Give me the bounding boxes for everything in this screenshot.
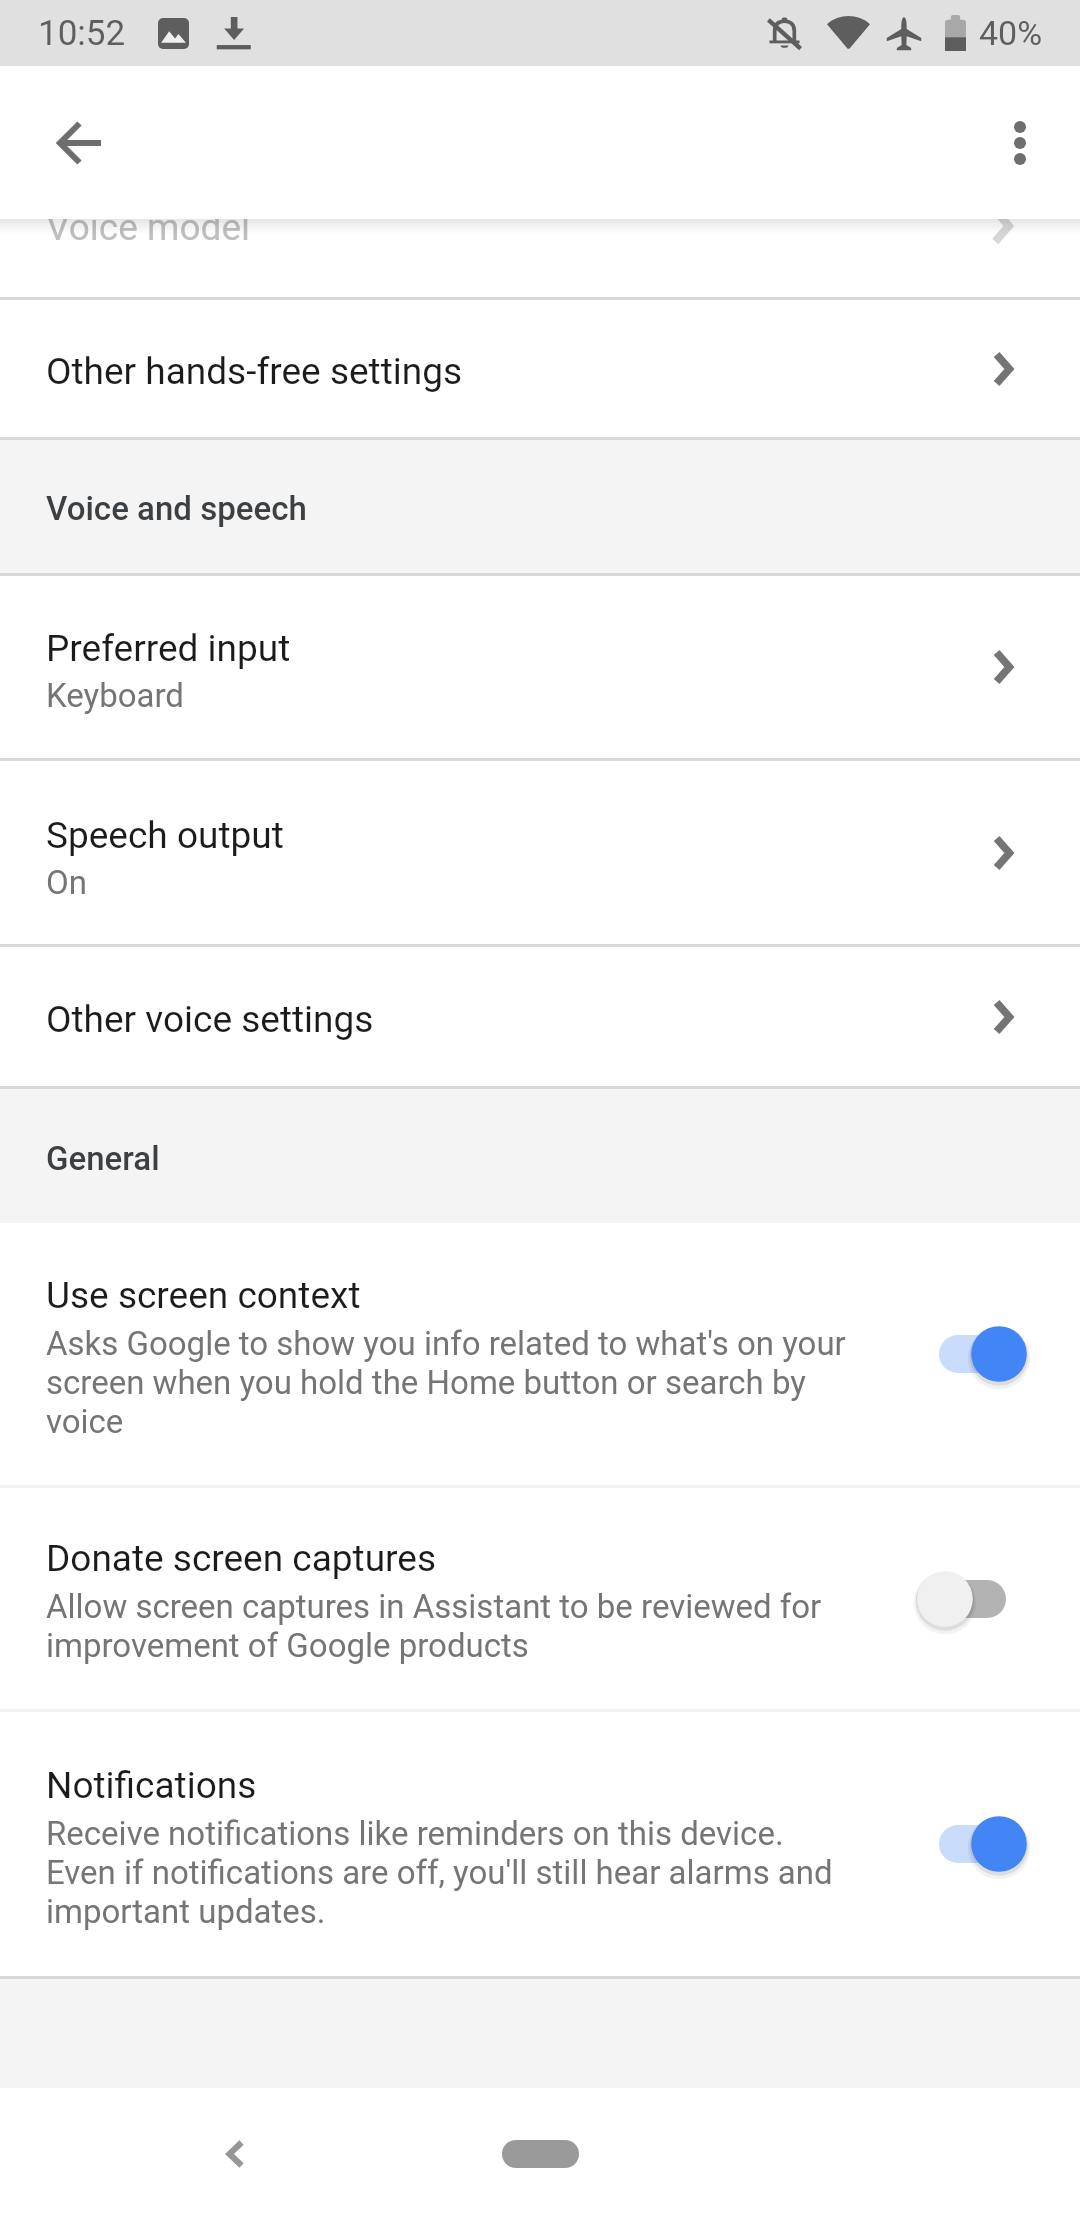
button[interactable]: Notifications xyxy=(0,1712,1080,1976)
button[interactable]: Use screen context xyxy=(0,1223,1080,1485)
staticText: Notifications xyxy=(46,1764,257,1807)
staticText: 40% xyxy=(979,13,1043,53)
staticText: Asks Google to show you info related to … xyxy=(46,1324,851,1441)
button[interactable]: Other voice settings xyxy=(0,947,1080,1086)
button[interactable]: Back xyxy=(190,2108,282,2200)
staticText: Other hands-free settings xyxy=(46,350,463,393)
staticText: Donate screen captures xyxy=(46,1537,437,1580)
button[interactable]: Other hands-free settings xyxy=(0,300,1080,437)
staticText: Keyboard xyxy=(46,676,184,715)
staticText: Allow screen captures in Assistant to be… xyxy=(46,1587,851,1665)
staticText: Preferred input xyxy=(46,627,291,670)
staticText: Voice and speech xyxy=(46,489,307,528)
staticText: Voice model xyxy=(46,219,251,249)
staticText: Speech output xyxy=(46,814,284,857)
button[interactable]: Donate screen captures xyxy=(0,1488,1080,1709)
button[interactable]: Preferred input xyxy=(0,576,1080,758)
button[interactable]: Home xyxy=(455,2118,625,2190)
button[interactable]: More options xyxy=(972,95,1068,191)
button[interactable]: Voice model xyxy=(0,219,1080,297)
staticText: Use screen context xyxy=(46,1274,361,1317)
staticText: 10:52 xyxy=(38,13,126,54)
staticText: General xyxy=(46,1139,160,1178)
button[interactable]: Speech output xyxy=(0,761,1080,944)
staticText: Other voice settings xyxy=(46,998,374,1041)
button[interactable]: Navigate up xyxy=(32,95,128,191)
staticText: On xyxy=(46,863,87,902)
staticText: Receive notifications like reminders on … xyxy=(46,1814,851,1931)
